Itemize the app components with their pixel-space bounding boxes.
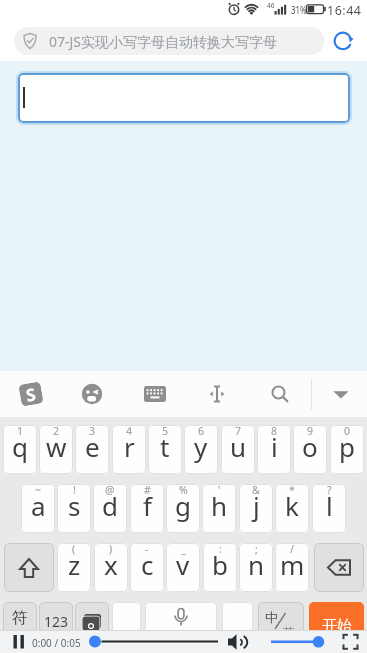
staticText: #: [144, 484, 151, 497]
staticText: y: [194, 429, 208, 464]
button[interactable]: 6: [184, 425, 218, 474]
button[interactable]: 1: [3, 425, 37, 474]
staticText: 英: [283, 625, 295, 640]
staticText: m: [280, 547, 305, 582]
button[interactable]: [269, 383, 291, 405]
button[interactable]: &: [239, 484, 273, 533]
button[interactable]: [314, 543, 364, 592]
button[interactable]: ': [202, 484, 236, 533]
button[interactable]: 中: [258, 602, 304, 651]
staticText: p: [339, 429, 355, 464]
button[interactable]: 123: [39, 602, 73, 651]
staticText: *: [289, 484, 295, 497]
staticText: r: [124, 429, 135, 464]
button[interactable]: ): [94, 543, 128, 592]
staticText: @: [105, 484, 115, 497]
staticText: _: [181, 543, 186, 556]
button[interactable]: 符: [3, 602, 37, 651]
staticText: o: [302, 429, 318, 464]
button[interactable]: 9: [293, 425, 327, 474]
staticText: 7: [235, 425, 242, 438]
button[interactable]: 开始: [309, 602, 364, 651]
staticText: ;: [255, 543, 258, 556]
button[interactable]: ?: [312, 484, 346, 533]
button[interactable]: ~: [21, 484, 55, 533]
staticText: -: [145, 543, 149, 556]
staticText: ): [109, 543, 113, 556]
staticText: 中: [265, 609, 278, 625]
button[interactable]: 2: [39, 425, 73, 474]
button[interactable]: [222, 602, 253, 651]
staticText: b: [212, 547, 228, 582]
staticText: q: [12, 429, 28, 464]
staticText: 07-JS实现小写字母自动转换大写字母: [49, 32, 278, 51]
staticText: 8: [271, 425, 278, 438]
staticText: 2: [53, 425, 60, 438]
staticText: i: [271, 429, 278, 464]
staticText: s: [68, 488, 81, 523]
button[interactable]: 3: [75, 425, 109, 474]
button[interactable]: (: [57, 543, 91, 592]
staticText: !: [73, 484, 76, 497]
button[interactable]: [18, 73, 350, 123]
button[interactable]: 07-JS实现小写字母自动转换大写字母: [14, 27, 324, 55]
button[interactable]: [75, 602, 109, 651]
button[interactable]: [330, 383, 352, 405]
staticText: t: [160, 429, 170, 464]
staticText: 0:00 / 0:05: [32, 636, 81, 650]
staticText: ~: [35, 484, 42, 497]
staticText: :: [219, 543, 222, 556]
staticText: 1: [17, 425, 24, 438]
staticText: 4: [126, 425, 133, 438]
button[interactable]: [4, 543, 54, 592]
button[interactable]: @: [93, 484, 127, 533]
staticText: 16:44: [327, 2, 362, 19]
staticText: n: [248, 547, 265, 582]
button[interactable]: 5: [148, 425, 182, 474]
button[interactable]: *: [275, 484, 309, 533]
button[interactable]: _: [166, 543, 200, 592]
staticText: d: [102, 488, 118, 523]
staticText: x: [104, 547, 118, 582]
button[interactable]: ;: [239, 543, 273, 592]
staticText: 6: [198, 425, 205, 438]
button[interactable]: #: [130, 484, 164, 533]
staticText: 3: [89, 425, 96, 438]
button[interactable]: [145, 602, 217, 651]
button[interactable]: [112, 602, 141, 651]
staticText: v: [176, 547, 190, 582]
button[interactable]: %: [166, 484, 200, 533]
staticText: a: [31, 488, 46, 523]
staticText: ': [218, 484, 221, 497]
staticText: 0: [344, 425, 351, 438]
button[interactable]: /: [275, 543, 309, 592]
staticText: 5: [162, 425, 169, 438]
staticText: z: [68, 547, 81, 582]
staticText: k: [285, 488, 299, 523]
staticText: u: [230, 429, 247, 464]
button[interactable]: 0: [330, 425, 364, 474]
button[interactable]: 4: [112, 425, 146, 474]
button[interactable]: 8: [257, 425, 291, 474]
staticText: 9: [307, 425, 314, 438]
staticText: S: [24, 382, 38, 406]
button[interactable]: [206, 383, 228, 405]
staticText: w: [46, 429, 67, 464]
button[interactable]: [144, 386, 166, 402]
staticText: /: [290, 543, 294, 556]
staticText: %: [179, 484, 188, 497]
button[interactable]: !: [57, 484, 91, 533]
staticText: j: [253, 488, 260, 523]
button[interactable]: [331, 29, 355, 53]
staticText: f: [143, 488, 152, 523]
staticText: 符: [12, 608, 28, 628]
staticText: ?: [327, 484, 332, 497]
staticText: &: [252, 484, 260, 497]
button[interactable]: :: [203, 543, 237, 592]
button[interactable]: -: [130, 543, 164, 592]
staticText: 31%: [291, 3, 307, 17]
button[interactable]: 7: [221, 425, 255, 474]
button[interactable]: S: [18, 381, 44, 407]
button[interactable]: [81, 383, 103, 405]
staticText: g: [175, 488, 191, 523]
